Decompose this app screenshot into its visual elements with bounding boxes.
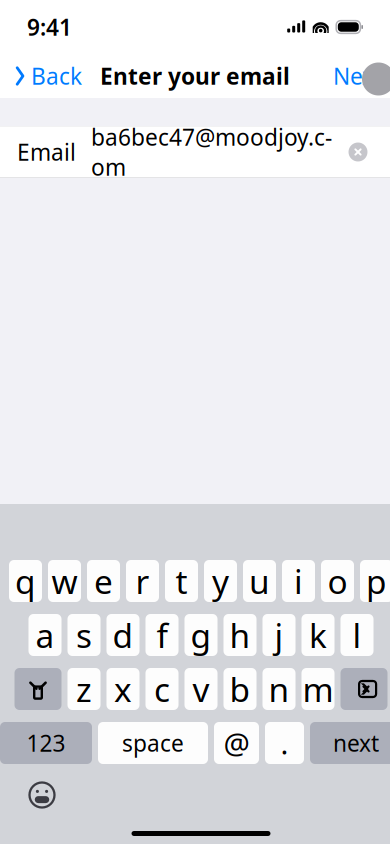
staticText: o [327, 559, 347, 603]
button[interactable]: s [67, 614, 100, 656]
staticText: 9:41 [27, 12, 72, 42]
staticText: g [190, 613, 211, 657]
button[interactable]: space [98, 722, 208, 764]
button[interactable]: r [126, 560, 159, 602]
staticText: c [154, 667, 170, 711]
staticText: Email [17, 137, 76, 167]
button[interactable]: b [223, 668, 256, 710]
staticText: f [156, 613, 167, 657]
staticText: j [274, 613, 283, 657]
button[interactable]: g [184, 614, 217, 656]
staticText: x [114, 667, 132, 711]
staticText: Next [333, 61, 382, 91]
button[interactable]: n [262, 668, 295, 710]
button[interactable]: p [360, 560, 390, 602]
button[interactable]: c [145, 668, 178, 710]
staticText: @ [223, 723, 249, 762]
button[interactable]: Shift [14, 668, 61, 710]
button[interactable]: Next [333, 53, 384, 98]
button[interactable]: 123 [0, 722, 92, 764]
staticText: n [268, 667, 289, 711]
staticText: w [51, 559, 77, 603]
staticText: h [229, 613, 250, 657]
staticText: Back [31, 61, 82, 91]
button[interactable]: l [340, 614, 373, 656]
button[interactable]: f [145, 614, 178, 656]
button[interactable]: t [165, 560, 198, 602]
button[interactable]: o [321, 560, 354, 602]
staticText: a [35, 613, 54, 657]
button[interactable]: z [67, 668, 100, 710]
staticText: u [249, 559, 270, 603]
staticText: s [76, 613, 92, 657]
button[interactable]: v [184, 668, 217, 710]
button[interactable]: Back [6, 55, 82, 97]
staticText: ba6bec47@moodjoy.com [91, 122, 332, 182]
button[interactable]: Emoji keyboard [20, 775, 64, 815]
button[interactable]: e [87, 560, 120, 602]
staticText: 123 [26, 728, 65, 758]
staticText: l [352, 613, 361, 657]
button[interactable]: Delete [340, 668, 387, 710]
staticText: e [94, 559, 113, 603]
staticText: z [76, 667, 92, 711]
staticText: i [294, 559, 303, 603]
button[interactable]: Email [0, 126, 390, 177]
button[interactable]: w [48, 560, 81, 602]
button[interactable]: @ [214, 722, 259, 764]
staticText: y [212, 559, 229, 603]
staticText: next [333, 728, 379, 758]
button[interactable]: d [106, 614, 139, 656]
staticText: d [112, 613, 133, 657]
staticText: . [280, 723, 288, 762]
button[interactable]: i [282, 560, 315, 602]
staticText: r [135, 559, 149, 603]
button[interactable]: x [106, 668, 139, 710]
staticText: q [15, 559, 36, 603]
staticText: v [192, 667, 209, 711]
button[interactable]: m [301, 668, 334, 710]
button[interactable]: u [243, 560, 276, 602]
button[interactable]: next [310, 722, 390, 764]
button[interactable]: y [204, 560, 237, 602]
staticText: m [302, 667, 333, 711]
staticText: p [366, 559, 387, 603]
button[interactable]: k [301, 614, 334, 656]
button[interactable]: h [223, 614, 256, 656]
button[interactable]: j [262, 614, 295, 656]
button[interactable]: q [9, 560, 42, 602]
staticText: space [122, 728, 184, 758]
staticText: t [175, 559, 187, 603]
button[interactable]: a [28, 614, 61, 656]
staticText: b [229, 667, 250, 711]
button[interactable]: . [265, 722, 304, 764]
staticText: Enter your email [100, 61, 290, 91]
staticText: k [309, 613, 327, 657]
